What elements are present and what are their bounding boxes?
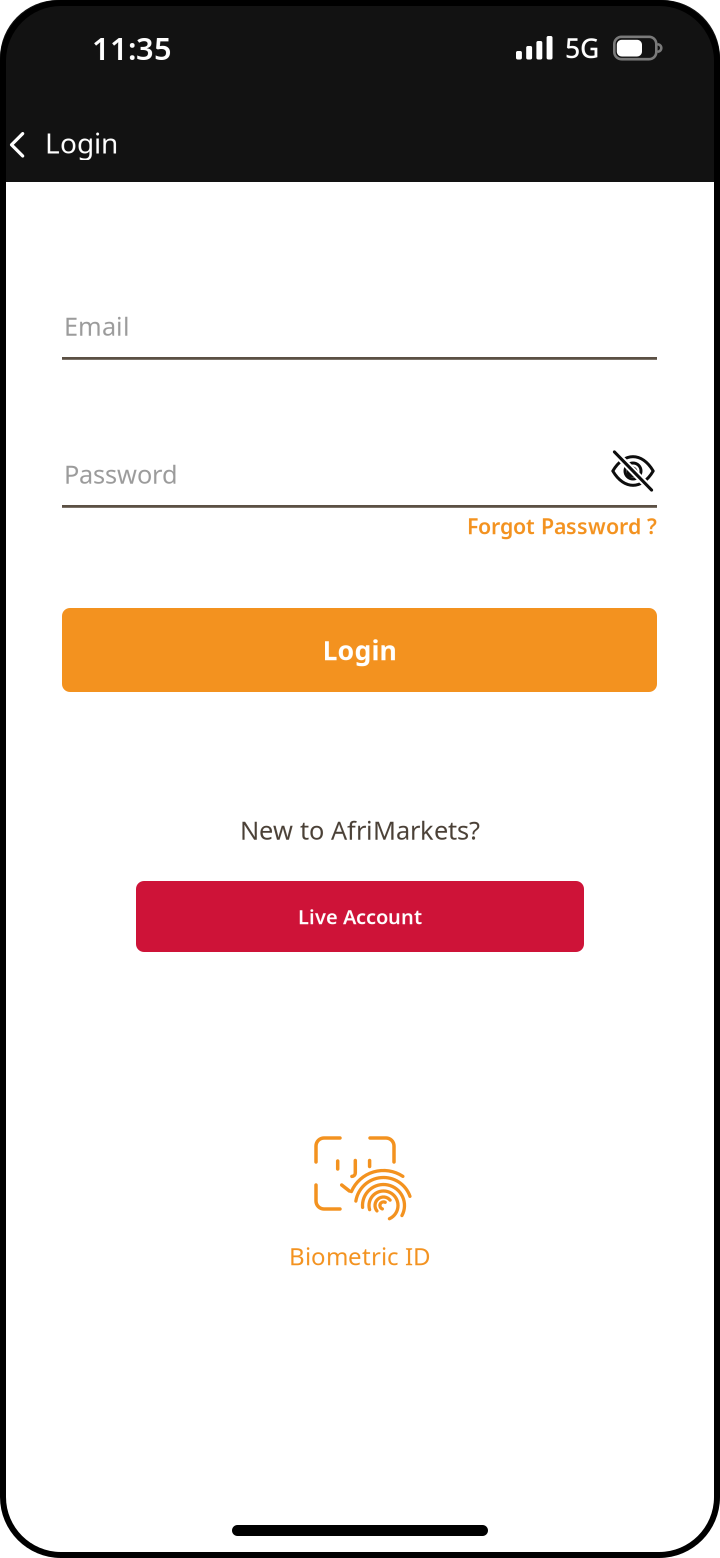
staticText: 5G [565,30,599,66]
staticText: 11:35 [92,28,172,68]
button[interactable]: Biometric ID [250,1136,470,1272]
button[interactable]: Show password [604,445,662,497]
staticText: Login [322,632,396,668]
staticText: Live Account [298,903,422,930]
staticText: Email [64,309,130,343]
button[interactable]: Live Account [136,881,584,952]
staticText: New to AfriMarkets? [240,813,480,847]
button[interactable]: Forgot Password ? [467,513,657,539]
button[interactable]: Login [62,608,657,692]
button[interactable]: Back [0,119,47,171]
staticText: Biometric ID [289,1240,431,1272]
staticText: Login [45,124,118,161]
staticText: Forgot Password ? [467,512,657,540]
staticText: Password [64,457,178,491]
